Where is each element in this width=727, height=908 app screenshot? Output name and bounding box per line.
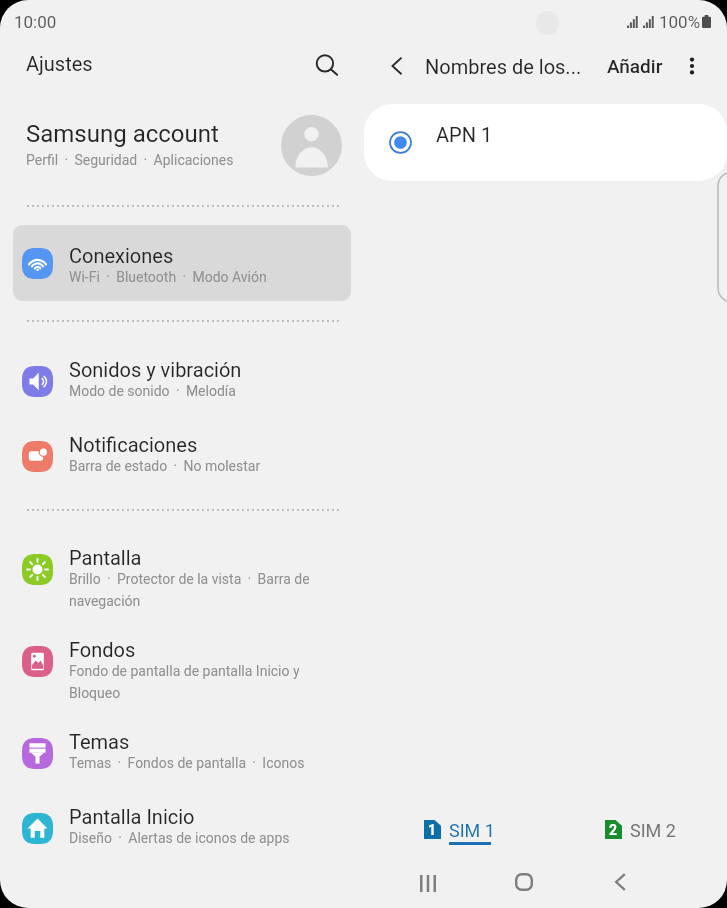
button[interactable]: Back bbox=[597, 859, 643, 905]
button[interactable]: Notificaciones bbox=[0, 420, 363, 488]
button[interactable]: 2 bbox=[597, 812, 707, 848]
staticText: Sonidos y vibración bbox=[69, 358, 242, 381]
staticText: Conexiones bbox=[69, 244, 174, 267]
button[interactable]: Pantalla bbox=[0, 533, 363, 601]
staticText: Ajustes bbox=[26, 52, 93, 75]
button[interactable]: Añadir bbox=[600, 50, 670, 82]
staticText: Nombres de los... bbox=[425, 55, 582, 78]
staticText: SIM 1 bbox=[449, 820, 495, 841]
staticText: APN 1 bbox=[436, 123, 493, 146]
staticText: SIM 2 bbox=[630, 820, 676, 841]
button[interactable]: Temas bbox=[0, 717, 363, 785]
button[interactable]: Recents bbox=[405, 860, 451, 906]
button[interactable]: Conexiones bbox=[13, 225, 351, 301]
button[interactable]: Pantalla Inicio bbox=[0, 792, 363, 860]
staticText: Temas · Fondos de pantalla · Iconos bbox=[69, 755, 305, 771]
staticText: 1 bbox=[428, 822, 437, 838]
staticText: Pantalla bbox=[69, 546, 142, 569]
button[interactable]: APN 1 bbox=[364, 104, 727, 181]
button[interactable]: Samsung account bbox=[0, 105, 363, 191]
button[interactable]: Sonidos y vibración bbox=[0, 345, 363, 413]
staticText: Perfil · Seguridad · Aplicaciones bbox=[26, 152, 234, 168]
staticText: 2 bbox=[609, 822, 618, 838]
button[interactable]: Fondos bbox=[0, 625, 363, 693]
staticText: Pantalla Inicio bbox=[69, 805, 195, 828]
staticText: 100% bbox=[659, 12, 701, 32]
staticText: 10:00 bbox=[14, 12, 57, 32]
staticText: Wi-Fi · Bluetooth · Modo Avión bbox=[69, 269, 267, 285]
staticText: Notificaciones bbox=[69, 433, 198, 456]
staticText: Fondo de pantalla de pantalla Inicio y B… bbox=[69, 663, 300, 702]
staticText: Fondos bbox=[69, 638, 136, 661]
staticText: Barra de estado · No molestar bbox=[69, 458, 261, 474]
staticText: Modo de sonido · Melodía bbox=[69, 383, 236, 399]
staticText: Brillo · Protector de la vista · Barra d… bbox=[69, 571, 310, 610]
staticText: Añadir bbox=[607, 55, 663, 77]
button[interactable]: Home bbox=[501, 859, 547, 905]
button[interactable]: 1 bbox=[416, 812, 526, 848]
button[interactable]: More options bbox=[670, 44, 714, 88]
staticText: Samsung account bbox=[26, 120, 219, 148]
button[interactable]: Search bbox=[305, 44, 349, 88]
staticText: Diseño · Alertas de iconos de apps bbox=[69, 830, 290, 846]
button[interactable]: Back bbox=[375, 44, 419, 88]
staticText: Temas bbox=[69, 730, 130, 753]
